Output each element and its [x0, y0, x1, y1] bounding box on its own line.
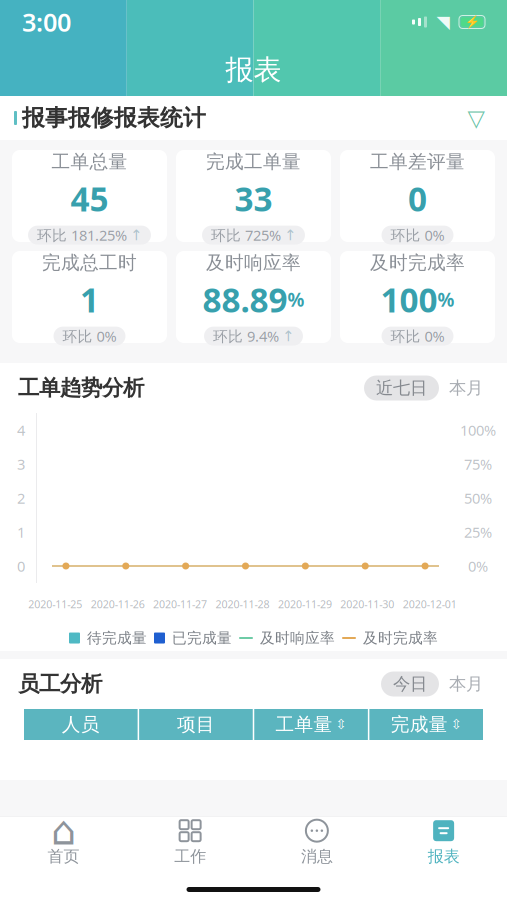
staticText: 工单趋势分析 [18, 375, 144, 401]
staticText: 报事报修报表统计 [22, 104, 206, 132]
staticText: 及时响应率 [260, 629, 335, 647]
staticText: 消息 [301, 847, 333, 866]
staticText: 2020-11-25 [28, 597, 82, 611]
staticText: 首页 [47, 847, 79, 866]
staticText: 2020-11-28 [215, 597, 269, 611]
staticText: 员工分析 [18, 671, 102, 697]
button[interactable]: 筛选 [459, 101, 493, 135]
button[interactable]: 及时响应率 [176, 251, 331, 343]
staticText: 25% [464, 522, 492, 542]
staticText: 环比 0% [62, 326, 116, 346]
staticText: 2020-11-29 [278, 597, 332, 611]
staticText: 工单总量 [51, 150, 127, 173]
button[interactable]: 完成工单量 [176, 150, 331, 242]
staticText: 75% [464, 454, 492, 474]
button[interactable]: 今日 [381, 671, 439, 696]
button[interactable]: 近七日 [364, 375, 439, 400]
staticText: 0 [17, 556, 25, 576]
staticText: 环比 0% [390, 326, 444, 346]
staticText: 报表 [428, 847, 460, 866]
staticText: 环比 9.4% [213, 326, 279, 346]
button[interactable]: 工单差评量 [340, 150, 495, 242]
staticText: 本月 [449, 377, 483, 399]
button[interactable]: 工作 [127, 816, 254, 868]
staticText: 2020-11-30 [340, 597, 394, 611]
button[interactable]: 本月 [443, 375, 489, 400]
button[interactable]: 报表 [380, 816, 507, 868]
staticText: 工作 [174, 847, 206, 866]
staticText: 0 [408, 176, 427, 221]
staticText: % [287, 287, 304, 312]
staticText: ◥ [436, 12, 449, 32]
staticText: 完成工单量 [206, 150, 301, 173]
staticText: ↑ [284, 227, 296, 243]
staticText: ⚡ [464, 15, 479, 29]
staticText: ⌂ [51, 808, 76, 853]
staticText: 1 [17, 522, 25, 542]
staticText: 1 [80, 277, 99, 322]
staticText: 4 [17, 420, 25, 440]
staticText: 已完成量 [172, 629, 232, 647]
button[interactable]: 本月 [443, 671, 489, 696]
staticText: 2020-12-01 [403, 597, 457, 611]
staticText: 环比 181.25% [37, 225, 127, 245]
staticText: ⇳ [336, 717, 347, 732]
staticText: 88.89 [202, 277, 287, 322]
staticText: 2 [17, 488, 25, 508]
staticText: 及时响应率 [206, 251, 301, 274]
button[interactable]: 完成总工时 [12, 251, 167, 343]
staticText: % [437, 287, 454, 312]
staticText: ↑ [282, 328, 294, 344]
staticText: 环比 725% [211, 225, 281, 245]
staticText: 本月 [449, 673, 483, 695]
staticText: 0% [468, 556, 488, 576]
staticText: 33 [234, 176, 272, 221]
staticText: 2020-11-27 [153, 597, 207, 611]
button[interactable]: 消息 [253, 816, 380, 868]
staticText: 完成总工时 [42, 251, 137, 274]
staticText: 工单量 [276, 713, 333, 736]
staticText: 报表 [225, 53, 281, 87]
staticText: 及时完成率 [370, 251, 465, 274]
button[interactable]: 工单总量 [12, 150, 167, 242]
staticText: 100% [460, 420, 496, 440]
staticText: 人员 [62, 713, 100, 736]
staticText: 待完成量 [87, 629, 147, 647]
staticText: 今日 [393, 673, 427, 695]
staticText: 3 [17, 454, 25, 474]
staticText: 2020-11-26 [91, 597, 145, 611]
staticText: 50% [464, 488, 492, 508]
staticText: 45 [70, 176, 108, 221]
staticText: 项目 [177, 713, 215, 736]
button[interactable]: 及时完成率 [340, 251, 495, 343]
button[interactable]: ⌂ [0, 816, 127, 868]
staticText: 近七日 [376, 377, 427, 399]
staticText: 3:00 [22, 5, 71, 39]
staticText: 及时完成率 [363, 629, 438, 647]
staticText: ⇳ [451, 717, 462, 732]
staticText: 完成量 [391, 713, 448, 736]
staticText: 环比 0% [390, 225, 444, 245]
staticText: ▽ [467, 105, 484, 131]
staticText: ↑ [130, 227, 142, 243]
staticText: 工单差评量 [370, 150, 465, 173]
staticText: 100 [380, 277, 437, 322]
